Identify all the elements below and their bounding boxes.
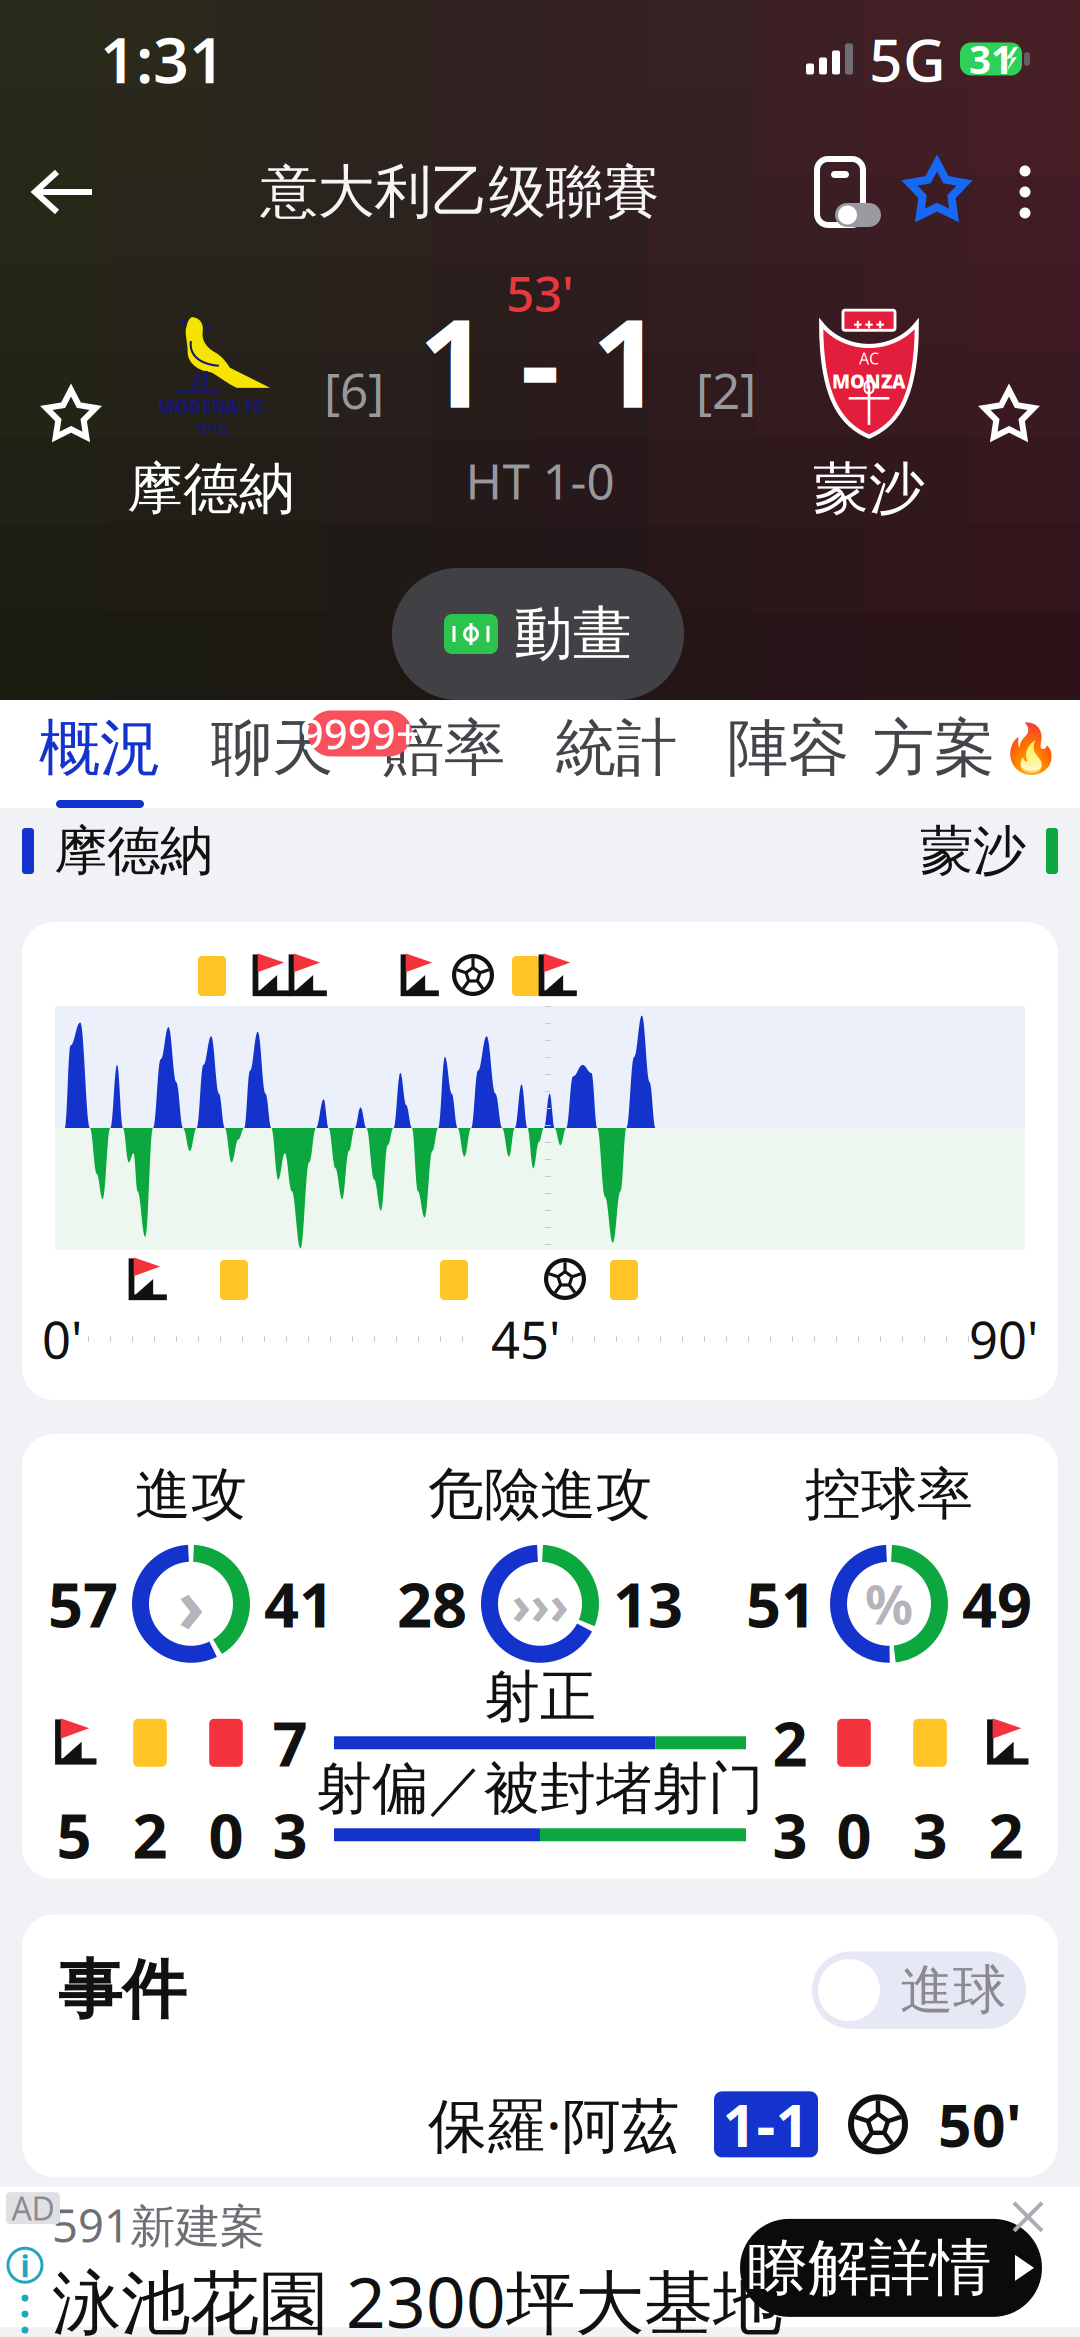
staticText: 0	[836, 1794, 871, 1875]
staticText: 危險進攻	[428, 1460, 652, 1529]
button[interactable]: More options	[986, 146, 1080, 238]
staticText: 49	[962, 1563, 1032, 1644]
staticText: 泳池花園 2300坪大基地	[52, 2255, 782, 2337]
staticText: 3	[272, 1794, 307, 1875]
button[interactable]: 統計	[530, 700, 702, 808]
staticText: 28	[397, 1563, 467, 1644]
staticText: 摩德納	[54, 818, 213, 884]
staticText: AD	[11, 2187, 54, 2229]
button[interactable]: Favourite Monza	[958, 365, 1060, 467]
staticText: 90'	[969, 1305, 1038, 1373]
staticText: 聊天	[211, 711, 333, 786]
staticText: 保羅·阿茲	[428, 2085, 680, 2163]
staticText: 50'	[938, 2085, 1022, 2163]
button[interactable]: 聊天	[186, 700, 358, 808]
staticText: 射正	[484, 1662, 596, 1731]
staticText: AC	[859, 348, 879, 369]
staticText: [6]	[324, 357, 384, 423]
button[interactable]: Back	[0, 144, 128, 240]
button[interactable]: 陣容	[702, 700, 874, 808]
staticText: ›››	[511, 1568, 568, 1639]
button[interactable]: 概況	[14, 700, 186, 808]
staticText: 5G	[869, 20, 946, 98]
staticText: 0'	[42, 1305, 82, 1373]
staticText: 陣容	[727, 711, 849, 786]
staticText: 9999+	[300, 706, 420, 761]
staticText: HT 1-0	[465, 448, 614, 513]
staticText: 進攻	[135, 1460, 247, 1529]
staticText: 1 - 1	[418, 279, 661, 442]
staticText: 控球率	[805, 1460, 973, 1529]
staticText: 13	[613, 1563, 683, 1644]
staticText: 意大利乙级聯賽	[260, 157, 659, 227]
staticText: ›	[177, 1554, 204, 1653]
staticText: 53'	[506, 260, 574, 326]
staticText: 2	[772, 1702, 807, 1783]
staticText: 🔥	[1001, 721, 1061, 776]
staticText: 事件	[58, 1951, 186, 2029]
staticText: 31	[969, 33, 1013, 85]
staticText: 動畫	[514, 598, 632, 670]
staticText: 1-1	[722, 2085, 809, 2163]
staticText: 2	[132, 1794, 167, 1875]
staticText: 概況	[39, 711, 161, 786]
staticText: 45'	[491, 1305, 560, 1373]
staticText: 51	[746, 1563, 816, 1644]
staticText: 57	[48, 1563, 118, 1644]
staticText: MODENA FC	[158, 395, 264, 418]
staticText: 蒙沙	[920, 818, 1026, 884]
staticText: 瞭解詳情	[747, 2230, 991, 2305]
button[interactable]: Close ad	[1002, 2191, 1054, 2243]
staticText: [2]	[696, 357, 756, 423]
button[interactable]: 進球	[812, 1951, 1026, 2029]
staticText: 7	[272, 1702, 307, 1783]
staticText: 3	[772, 1794, 807, 1875]
staticText: 摩德納	[127, 455, 295, 523]
staticText: 5	[56, 1794, 91, 1875]
staticText: 賠率	[383, 711, 505, 786]
button[interactable]: 賠率	[358, 700, 530, 808]
staticText: 蒙沙	[813, 455, 925, 523]
staticText: 方案	[873, 711, 995, 786]
staticText: 1:31	[100, 17, 225, 101]
staticText: 1912	[195, 418, 227, 437]
staticText: 3	[912, 1794, 947, 1875]
staticText: 0	[208, 1794, 243, 1875]
button[interactable]: Match notifications	[792, 144, 888, 240]
staticText: 2	[988, 1794, 1023, 1875]
staticText: MONZA	[832, 369, 906, 394]
staticText: 射偏／被封堵射门	[316, 1754, 764, 1823]
button[interactable]: Favourite match	[888, 145, 986, 239]
staticText: 591新建案	[52, 2195, 265, 2255]
button[interactable]: 瞭解詳情	[740, 2219, 1042, 2317]
staticText: i	[20, 2245, 29, 2286]
button[interactable]: 動畫	[392, 568, 684, 700]
button[interactable]: 方案	[874, 700, 1060, 808]
staticText: 進球	[900, 1957, 1006, 2023]
staticText: %	[865, 1568, 913, 1639]
button[interactable]: Favourite Modena	[20, 365, 122, 467]
staticText: 41	[264, 1563, 334, 1644]
staticText: 統計	[555, 711, 677, 786]
